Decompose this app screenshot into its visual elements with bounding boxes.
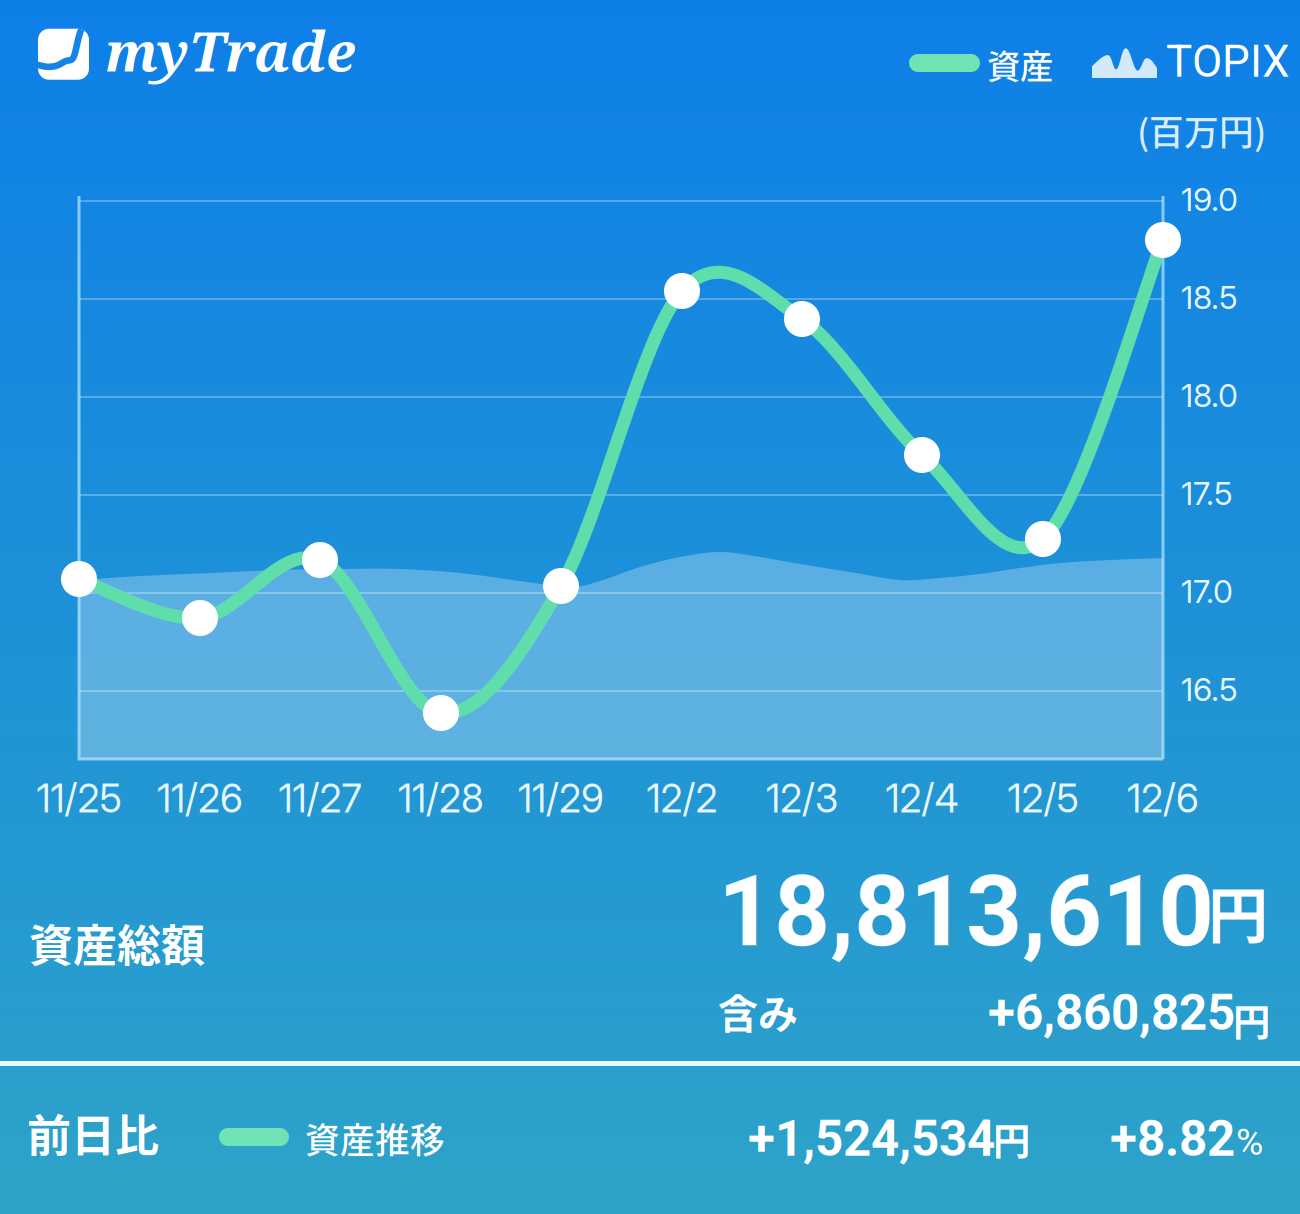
staticText: 11/27 (278, 775, 361, 822)
button[interactable]: myTrade (38, 17, 355, 91)
staticText: 11/25 (36, 775, 121, 822)
staticText: 12/5 (1007, 775, 1078, 822)
staticText: 12/4 (885, 775, 958, 822)
staticText: 18.0 (1181, 376, 1238, 415)
staticText: 12/3 (766, 775, 838, 822)
staticText: 前日比 (27, 1101, 159, 1165)
staticText: 円 (1208, 868, 1268, 955)
staticText: +6,860,825 (988, 984, 1235, 1042)
staticText: % (1236, 1120, 1263, 1164)
staticText: 11/29 (518, 775, 604, 822)
staticText: 18,813,610 (718, 855, 1214, 969)
staticText: 16.5 (1181, 670, 1238, 709)
staticText: 資産推移 (305, 1113, 445, 1163)
staticText: 11/26 (157, 775, 243, 822)
staticText: TOPIX (1166, 36, 1290, 88)
staticText: 含み (718, 982, 798, 1040)
staticText: 12/6 (1127, 775, 1199, 822)
staticText: 17.5 (1181, 474, 1233, 513)
staticText: (百万円) (1137, 105, 1266, 155)
staticText: +8.82 (1110, 1110, 1235, 1168)
staticText: 17.0 (1181, 572, 1233, 611)
staticText: 11/28 (398, 775, 484, 822)
staticText: 円 (1233, 993, 1270, 1047)
staticText: 12/2 (646, 775, 717, 822)
staticText: 18.5 (1181, 278, 1238, 317)
staticText: 資産総額 (29, 911, 205, 975)
staticText: 資産 (987, 40, 1053, 88)
staticText: +1,524,534 (748, 1110, 995, 1168)
staticText: myTrade (105, 13, 355, 87)
staticText: 19.0 (1181, 180, 1238, 219)
staticText: 円 (993, 1112, 1030, 1166)
